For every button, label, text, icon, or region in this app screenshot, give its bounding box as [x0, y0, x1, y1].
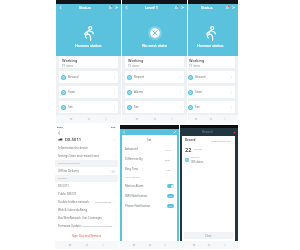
staticText: 19 items	[128, 64, 140, 68]
button[interactable]: Recents	[163, 243, 167, 247]
staticText: Alarm	[134, 90, 143, 94]
button[interactable]: Motion Alarm	[122, 181, 177, 191]
staticText: Advanced	[125, 147, 138, 151]
button[interactable]: Bus WiseNetwork Unit Coverages	[55, 214, 118, 222]
button[interactable]: Ring Time	[122, 164, 177, 174]
button[interactable]: DX-5011	[55, 182, 118, 190]
staticText: Not Connected	[95, 201, 112, 204]
button[interactable]: Back	[57, 131, 61, 135]
staticText: 19 items	[189, 64, 201, 68]
staticText: SMS Notification	[125, 194, 148, 198]
button[interactable]: Record	[59, 71, 118, 83]
staticText: Scan	[68, 90, 76, 94]
button[interactable]: Recents	[223, 117, 227, 121]
staticText: records	[194, 148, 203, 151]
button[interactable]: Working	[188, 56, 235, 68]
button[interactable]: Home	[153, 117, 157, 121]
button[interactable]: Notifications	[225, 5, 230, 10]
staticText: Record	[195, 75, 206, 79]
button[interactable]: Back	[122, 130, 126, 134]
button[interactable]: Back	[135, 117, 139, 121]
staticText: On	[169, 195, 172, 198]
button[interactable]: Information the device	[55, 144, 118, 152]
button[interactable]: Firmware Update	[55, 222, 118, 230]
button[interactable]: Recents	[104, 117, 108, 121]
button[interactable]: Difference By	[122, 154, 177, 164]
button[interactable]: Back	[188, 5, 190, 10]
staticText: Status	[201, 5, 213, 10]
staticText: Public DX5011	[58, 192, 77, 196]
staticText: Clear	[205, 234, 212, 238]
staticText: Alarm Settings	[125, 176, 141, 179]
staticText: DX-5011	[58, 184, 69, 188]
staticText: 22	[185, 146, 192, 153]
staticText: Set	[68, 105, 73, 109]
button[interactable]: Sign Out and Remove	[71, 233, 103, 239]
staticText: General Information	[58, 162, 81, 165]
staticText: Report	[134, 75, 145, 79]
button[interactable]: Report	[125, 71, 184, 83]
button[interactable]: Record	[188, 71, 235, 83]
button[interactable]: Back	[68, 243, 72, 247]
staticText: No nest state	[142, 43, 167, 48]
button[interactable]: Recents	[170, 117, 174, 121]
button[interactable]: Double hidden network	[55, 198, 118, 206]
staticText: Set	[147, 138, 152, 142]
button[interactable]: Phone Notification	[122, 201, 177, 211]
button[interactable]: Home	[87, 117, 91, 121]
staticText: Level 1	[145, 5, 158, 10]
button[interactable]: Download Record	[210, 138, 232, 143]
button[interactable]: Home	[209, 117, 213, 121]
button[interactable]: Back	[69, 117, 73, 121]
staticText: Sign Out and Remove	[72, 234, 102, 238]
button[interactable]: Web & SubnetLoRaing	[55, 206, 118, 214]
button[interactable]: Advanced	[122, 144, 177, 154]
button[interactable]: Back	[192, 243, 196, 247]
button[interactable]: Settings State and restart/reset	[55, 152, 118, 160]
staticText: Settings State and restart/reset	[58, 154, 99, 158]
button[interactable]: Notifications	[108, 5, 113, 10]
button[interactable]: Set	[188, 101, 235, 113]
button[interactable]: Home	[85, 243, 89, 247]
button[interactable]: Edit	[173, 130, 177, 134]
button[interactable]: Public DX5011	[55, 190, 118, 198]
button[interactable]: Scan	[188, 86, 235, 98]
button[interactable]: Scan	[180, 5, 185, 10]
staticText: Settings	[58, 177, 67, 180]
button[interactable]: Scan	[231, 5, 236, 10]
staticText: DX-5011	[65, 137, 81, 142]
button[interactable]: Alerts	[233, 131, 236, 134]
staticText: 19 items	[62, 64, 74, 68]
staticText: Double hidden network	[58, 200, 89, 204]
button[interactable]: Recents	[101, 243, 105, 247]
button[interactable]: Clear	[184, 232, 233, 239]
button[interactable]: Back	[58, 5, 63, 10]
staticText: Bus WiseNetwork Unit Coverages	[58, 216, 102, 220]
button[interactable]: Working	[125, 56, 184, 68]
staticText: Information the device	[58, 146, 88, 150]
button[interactable]: Home	[207, 243, 211, 247]
staticText: Set	[134, 105, 139, 109]
button[interactable]: Home	[148, 243, 152, 247]
staticText: Set	[195, 105, 200, 109]
button[interactable]: Offline Delivery	[55, 167, 118, 175]
staticText: Download Record	[211, 139, 231, 142]
button[interactable]: Back	[194, 117, 198, 121]
staticText: Human status	[75, 43, 102, 48]
staticText: On	[169, 205, 172, 208]
button[interactable]: Set	[125, 101, 184, 113]
button[interactable]: Alarm	[125, 86, 184, 98]
staticText: ▪▪▪	[111, 126, 116, 129]
staticText: Record	[68, 75, 79, 79]
button[interactable]: Notifications	[174, 5, 179, 10]
button[interactable]: Scan	[59, 86, 118, 98]
button[interactable]: Recents	[223, 243, 227, 247]
button[interactable]: Working	[59, 56, 118, 68]
button[interactable]: SMS Notification	[122, 191, 177, 201]
button[interactable]: Back	[132, 243, 136, 247]
button[interactable]: Back	[124, 5, 129, 10]
button[interactable]: Set	[59, 101, 118, 113]
staticText: Web & SubnetLoRaing	[58, 208, 88, 212]
button[interactable]: Scan	[114, 5, 119, 10]
staticText: 12 %	[165, 148, 171, 151]
